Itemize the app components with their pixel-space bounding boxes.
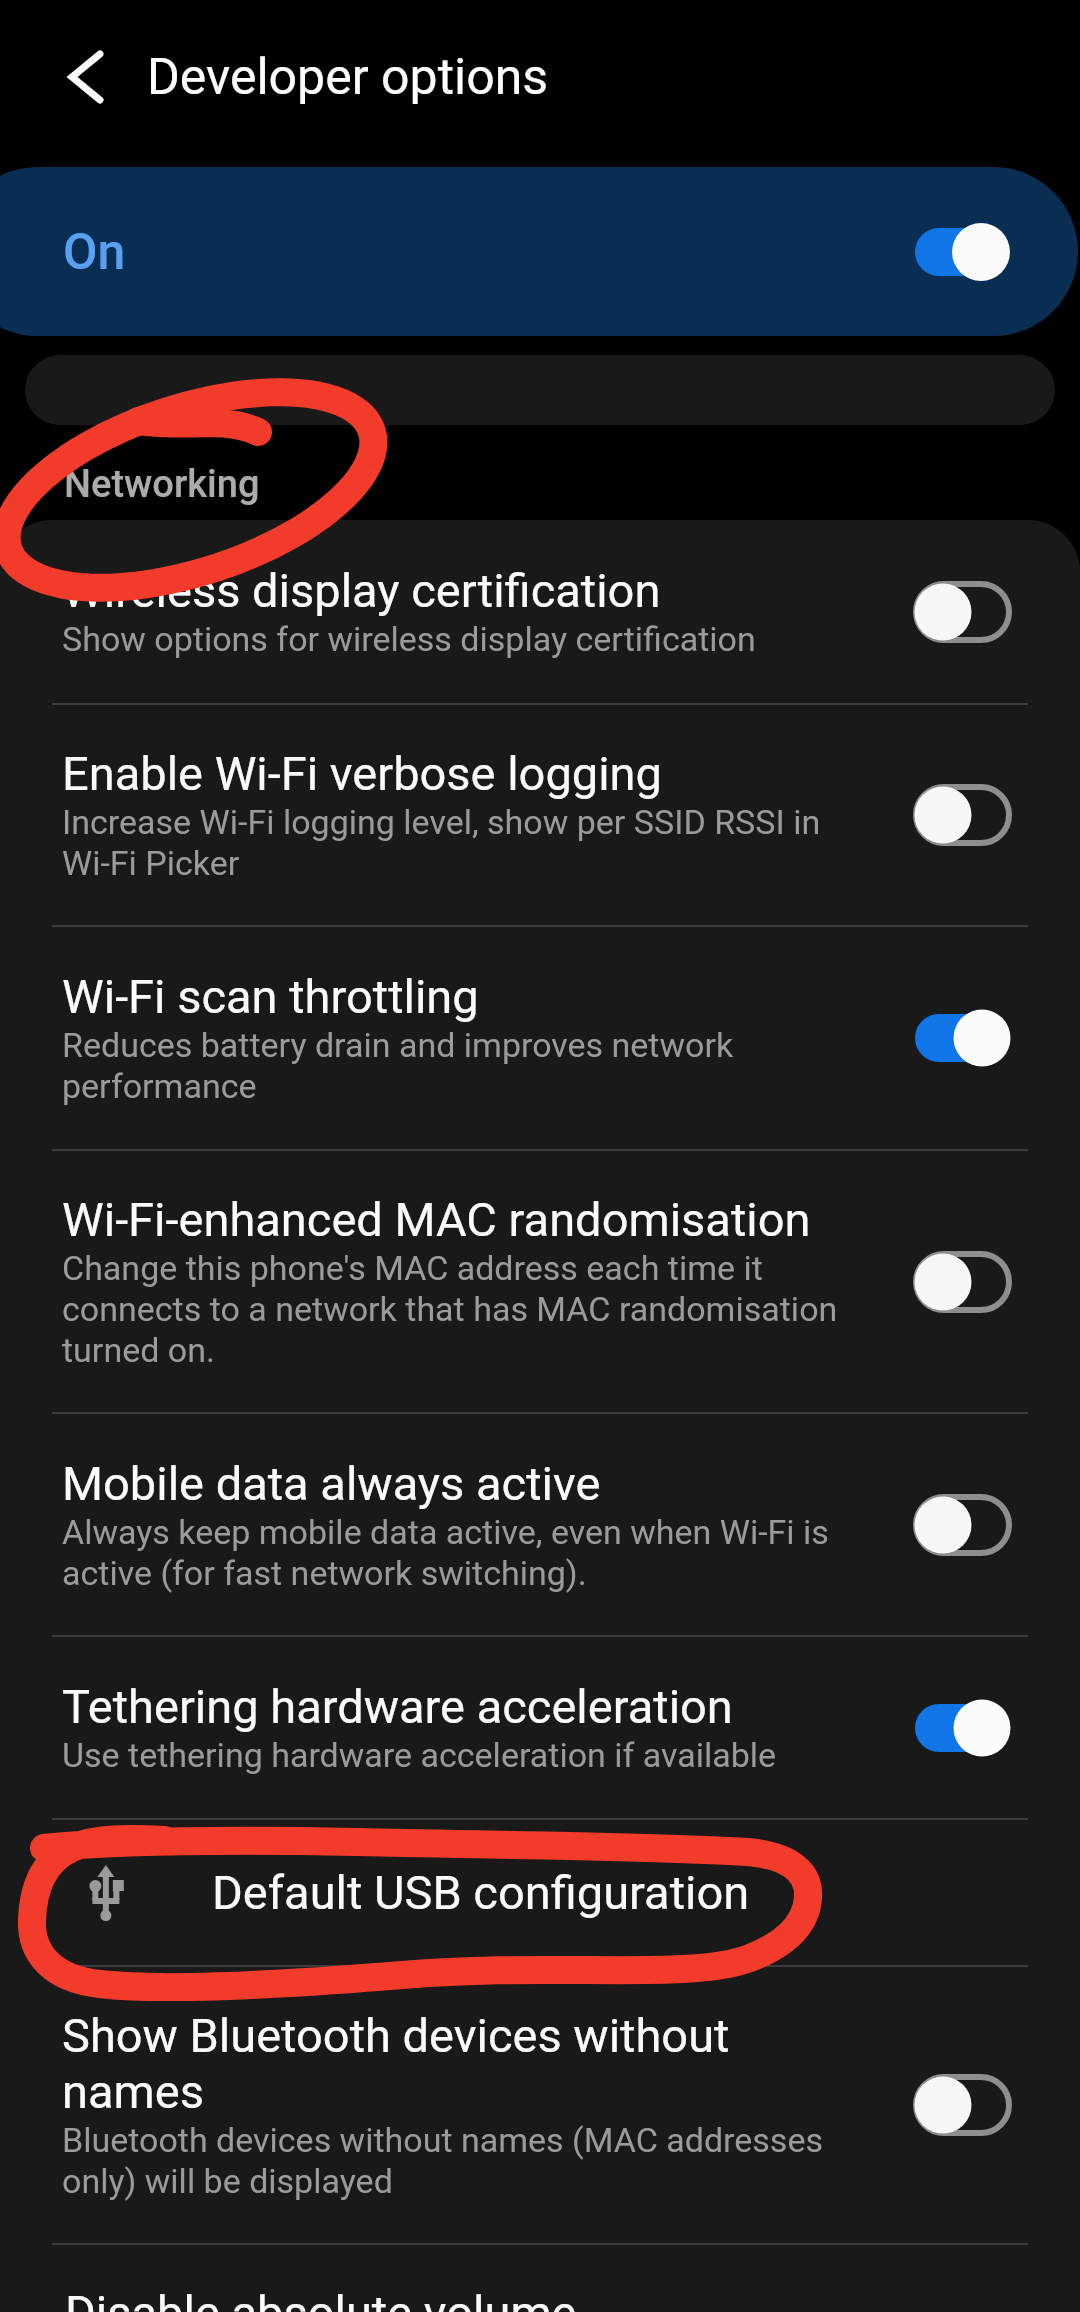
button[interactable]: Switch on xyxy=(892,1678,1032,1778)
button[interactable]: Mobile data always active xyxy=(0,1414,1080,1635)
button[interactable]: Wireless display certification xyxy=(0,520,1080,703)
staticText: Increase Wi-Fi logging level, show per S… xyxy=(62,802,830,884)
staticText: Networking xyxy=(64,462,260,507)
button[interactable]: Switch off xyxy=(892,1232,1032,1332)
staticText: Wireless display certification xyxy=(62,563,830,619)
staticText: Bluetooth devices without names (MAC add… xyxy=(62,2120,837,2202)
button[interactable]: Disable absolute volume xyxy=(0,2245,1080,2312)
button[interactable]: Switch off xyxy=(892,1475,1032,1575)
staticText: Wi-Fi scan throttling xyxy=(62,969,830,1025)
staticText: Always keep mobile data active, even whe… xyxy=(62,1512,852,1594)
staticText: On xyxy=(63,223,126,282)
staticText: Change this phone's MAC address each tim… xyxy=(62,1248,862,1371)
staticText: Wi-Fi-enhanced MAC randomisation xyxy=(62,1192,862,1248)
staticText: Show Bluetooth devices without names xyxy=(62,2008,752,2120)
button[interactable]: Enable Wi-Fi verbose logging xyxy=(0,705,1080,925)
staticText: Enable Wi-Fi verbose logging xyxy=(62,746,830,802)
staticText: Mobile data always active xyxy=(62,1456,852,1512)
button[interactable]: Switch off xyxy=(892,2055,1032,2155)
staticText: Developer options xyxy=(147,48,549,107)
button[interactable]: Switch on xyxy=(892,988,1032,1088)
button[interactable]: On xyxy=(0,167,1078,336)
button[interactable]: Navigate up xyxy=(31,22,141,132)
staticText: Disable absolute volume xyxy=(65,2285,577,2312)
staticText: Reduces battery drain and improves netwo… xyxy=(62,1025,830,1107)
button[interactable]: Tethering hardware acceleration xyxy=(0,1637,1080,1818)
staticText: Default USB configuration xyxy=(212,1865,750,1921)
button[interactable]: Switch off xyxy=(892,765,1032,865)
staticText: Show options for wireless display certif… xyxy=(62,619,830,660)
staticText: Use tethering hardware acceleration if a… xyxy=(62,1735,830,1776)
button[interactable]: Default USB configuration xyxy=(0,1820,1080,1965)
button[interactable]: Wi-Fi-enhanced MAC randomisation xyxy=(0,1151,1080,1412)
staticText: Tethering hardware acceleration xyxy=(62,1679,830,1735)
button[interactable]: Show Bluetooth devices without names xyxy=(0,1967,1080,2243)
button[interactable]: Wi-Fi scan throttling xyxy=(0,927,1080,1149)
button[interactable]: Switch off xyxy=(892,562,1032,662)
